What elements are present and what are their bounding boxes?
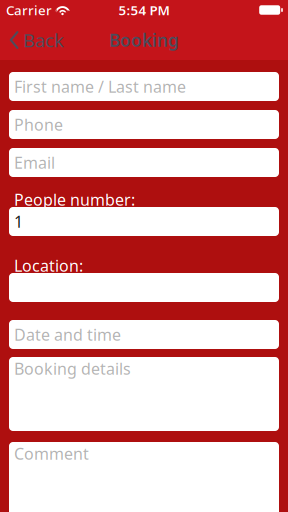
button[interactable]: Booking details xyxy=(9,357,279,431)
staticText: Location: xyxy=(14,255,83,276)
staticText: Carrier xyxy=(6,1,52,19)
staticText: First name / Last name xyxy=(14,76,186,97)
button[interactable]: 1 xyxy=(9,207,279,236)
button[interactable]: First name / Last name xyxy=(9,72,279,101)
staticText: 5:54 PM xyxy=(118,1,169,19)
staticText: Phone xyxy=(14,114,63,135)
button[interactable]: Comment xyxy=(9,442,279,512)
staticText: 1 xyxy=(14,211,23,232)
button[interactable]: Date and time xyxy=(9,320,279,349)
staticText: Booking xyxy=(109,28,179,51)
staticText: Comment xyxy=(14,443,89,464)
staticText: Booking details xyxy=(14,358,131,379)
button[interactable]: Back xyxy=(0,20,72,60)
staticText: Back xyxy=(23,28,64,52)
button[interactable] xyxy=(9,273,279,302)
button[interactable]: Email xyxy=(9,148,279,177)
staticText: People number: xyxy=(14,189,135,210)
staticText: Date and time xyxy=(14,324,121,345)
button[interactable]: Phone xyxy=(9,110,279,139)
staticText: Email xyxy=(14,152,55,173)
